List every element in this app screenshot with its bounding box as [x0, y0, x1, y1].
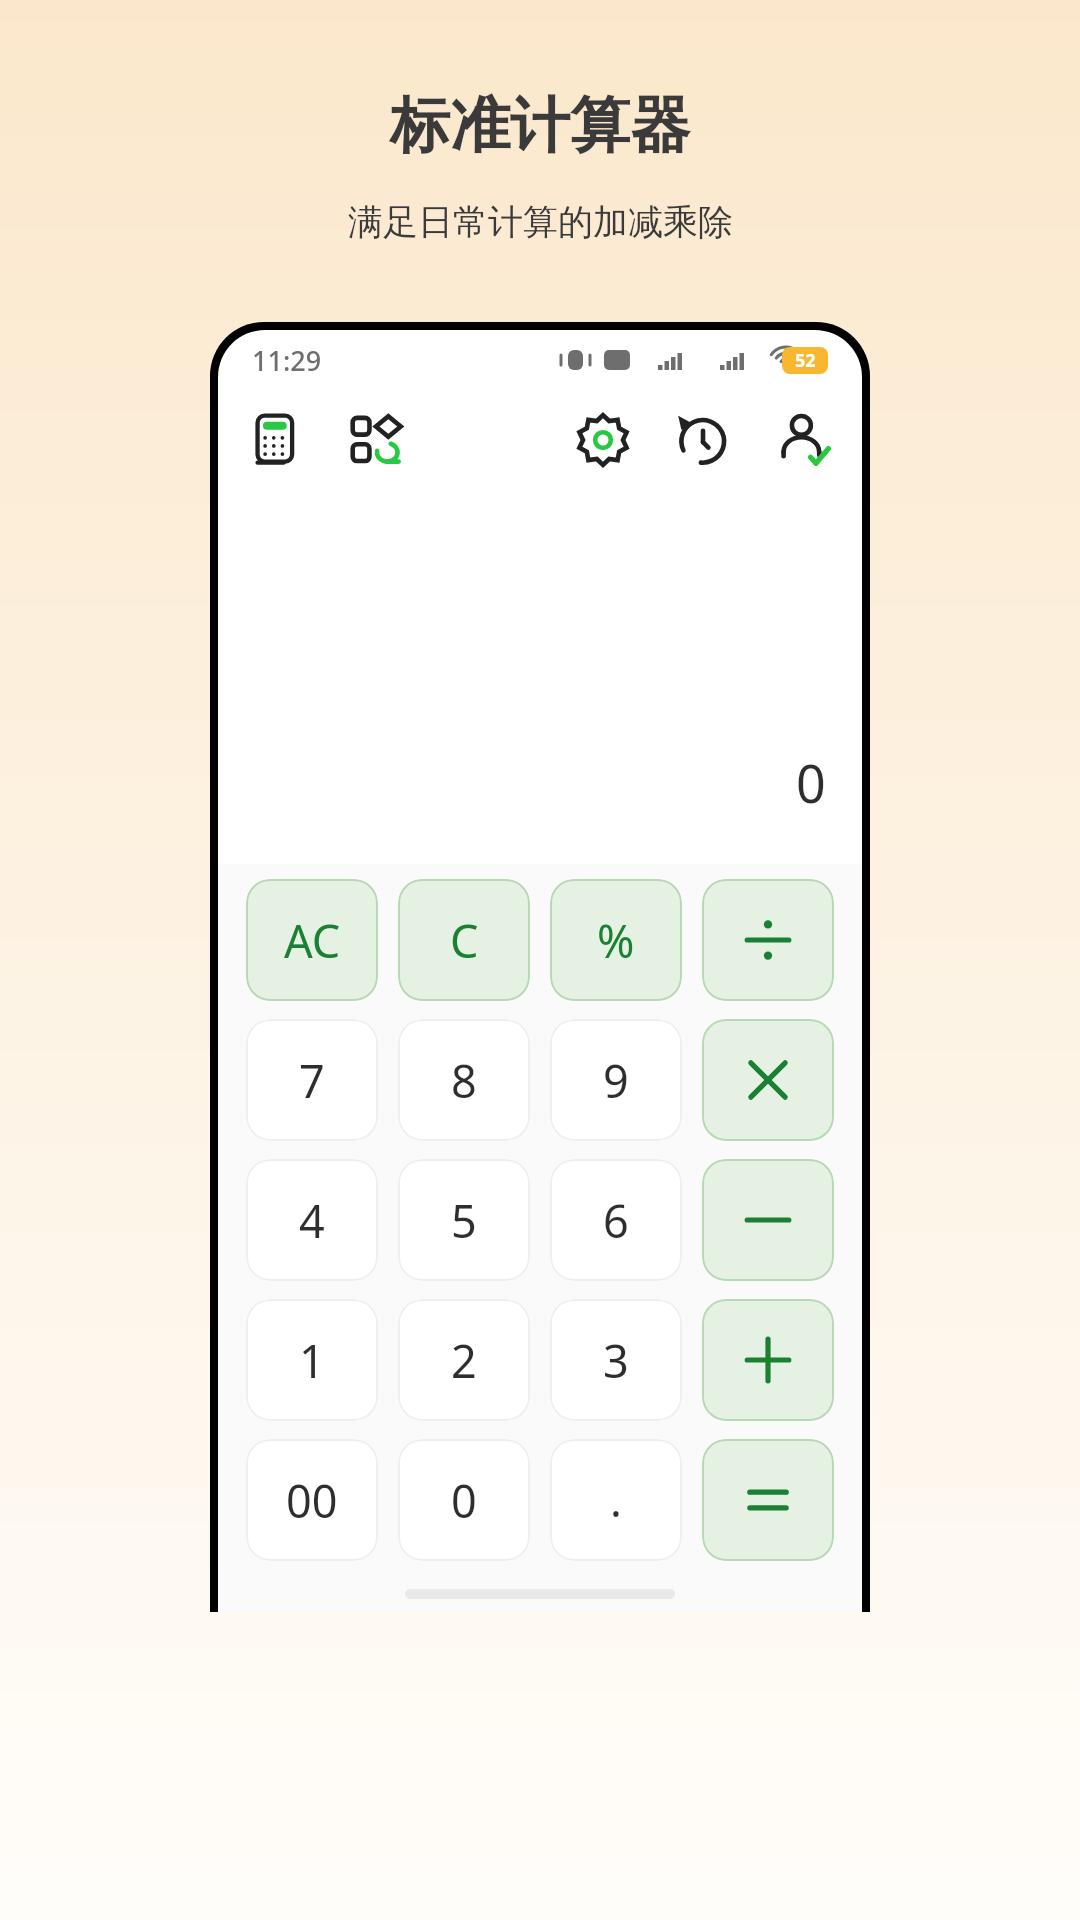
button[interactable]: 1 — [246, 1299, 378, 1421]
button[interactable]: History — [670, 407, 736, 473]
button[interactable]: 5 — [398, 1159, 530, 1281]
staticText: 9 — [603, 1050, 629, 1111]
staticText: 5 — [451, 1190, 477, 1251]
staticText: 0 — [796, 747, 826, 818]
button[interactable]: . — [550, 1439, 682, 1561]
staticText: 52 — [795, 348, 816, 373]
staticText: 0 — [451, 1470, 477, 1531]
staticText: 2 — [451, 1330, 477, 1391]
staticText: 00 — [286, 1470, 338, 1531]
button[interactable]: 9 — [550, 1019, 682, 1141]
staticText: 1 — [299, 1330, 325, 1391]
button[interactable]: 8 — [398, 1019, 530, 1141]
staticText: 11:29 — [252, 342, 322, 379]
staticText: 6 — [603, 1190, 629, 1251]
button[interactable]: 3 — [550, 1299, 682, 1421]
button[interactable]: Apps — [344, 407, 410, 473]
button[interactable]: 6 — [550, 1159, 682, 1281]
button[interactable]: Calculator — [244, 407, 310, 473]
button[interactable]: 2 — [398, 1299, 530, 1421]
button[interactable]: Equals — [702, 1439, 834, 1561]
staticText: . — [610, 1470, 622, 1530]
button[interactable]: C — [398, 879, 530, 1001]
staticText: AC — [284, 910, 341, 971]
button[interactable]: Minus — [702, 1159, 834, 1281]
staticText: 3 — [603, 1330, 629, 1391]
staticText: C — [450, 910, 479, 971]
button[interactable]: Divide — [702, 879, 834, 1001]
staticText: 4 — [299, 1190, 325, 1251]
staticText: 7 — [299, 1050, 325, 1111]
button[interactable]: Settings — [570, 407, 636, 473]
staticText: 8 — [451, 1050, 477, 1111]
button[interactable]: Plus — [702, 1299, 834, 1421]
button[interactable]: AC — [246, 879, 378, 1001]
staticText: % — [597, 910, 635, 971]
button[interactable]: 7 — [246, 1019, 378, 1141]
button[interactable]: 4 — [246, 1159, 378, 1281]
button[interactable]: 00 — [246, 1439, 378, 1561]
button[interactable]: Account — [770, 407, 836, 473]
button[interactable]: Multiply — [702, 1019, 834, 1141]
staticText: 满足日常计算的加减乘除 — [348, 200, 733, 244]
button[interactable]: 0 — [398, 1439, 530, 1561]
button[interactable]: % — [550, 879, 682, 1001]
staticText: 标准计算器 — [390, 88, 690, 164]
